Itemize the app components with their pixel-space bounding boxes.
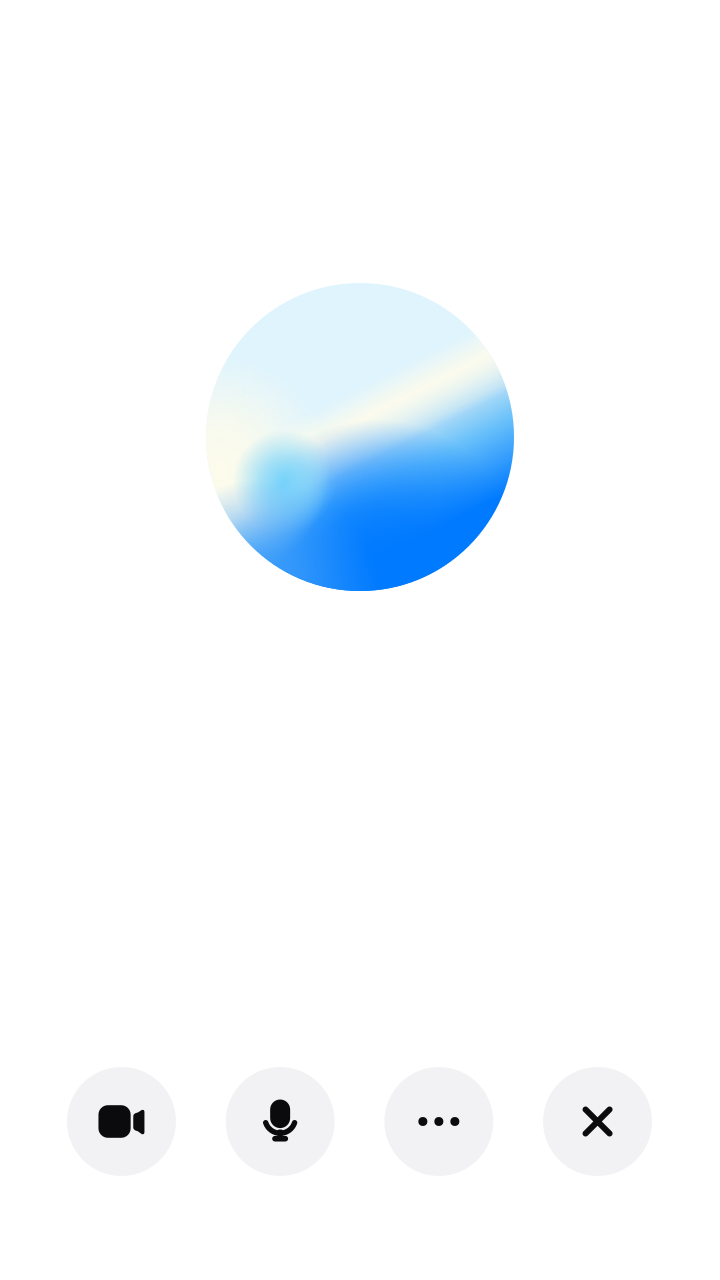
button[interactable]: End call: [512, 1038, 682, 1211]
button[interactable]: Mute: [195, 1038, 365, 1211]
button[interactable]: Turn camera off: [36, 1038, 206, 1211]
button[interactable]: More: [354, 1038, 524, 1211]
